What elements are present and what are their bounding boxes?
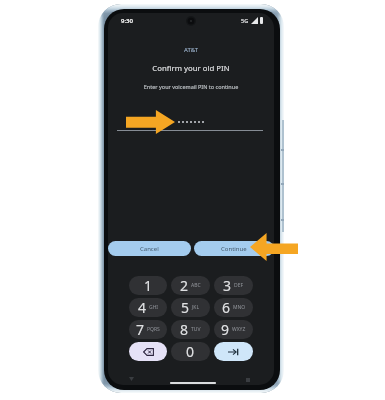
staticText: Continue xyxy=(221,245,247,253)
staticText: 2 xyxy=(180,276,189,295)
staticText: Enter your voicemail PIN to continue xyxy=(108,83,274,90)
button[interactable]: 9 xyxy=(214,320,253,339)
button[interactable]: Backspace xyxy=(129,342,167,361)
button[interactable]: 1 xyxy=(129,276,167,295)
staticText: 5 xyxy=(181,298,190,317)
staticText: DEF xyxy=(234,282,244,289)
staticText: ABC xyxy=(191,282,201,289)
staticText: 1 xyxy=(144,276,153,295)
staticText: 4 xyxy=(138,298,147,317)
staticText: 8 xyxy=(180,320,189,339)
staticText: AT&T xyxy=(108,46,274,54)
staticText: WXYZ xyxy=(232,326,246,333)
staticText: 6 xyxy=(222,298,231,317)
button[interactable]: 6 xyxy=(214,298,253,317)
button[interactable]: Submit xyxy=(214,342,253,361)
staticText: GHI xyxy=(149,304,159,311)
staticText: 9 xyxy=(221,320,230,339)
staticText: Cancel xyxy=(140,245,159,253)
staticText: MNO xyxy=(233,304,246,311)
staticText: TUV xyxy=(191,326,201,333)
button[interactable]: 2 xyxy=(171,276,210,295)
staticText: Confirm your old PIN xyxy=(108,63,274,74)
other: Back xyxy=(129,377,134,381)
staticText: 7 xyxy=(136,320,145,339)
staticText: 5G xyxy=(241,17,249,24)
button[interactable]: 5 xyxy=(171,298,210,317)
button[interactable]: 0 xyxy=(171,342,210,361)
button[interactable]: Cancel xyxy=(108,241,191,256)
staticText: 0 xyxy=(186,342,195,361)
button[interactable]: Continue xyxy=(194,241,274,256)
staticText: JKL xyxy=(192,304,200,311)
button[interactable]: 4 xyxy=(129,298,167,317)
staticText: PQRS xyxy=(147,326,160,333)
button[interactable]: 7 xyxy=(129,320,167,339)
button[interactable]: 8 xyxy=(171,320,210,339)
staticText: 9:30 xyxy=(121,17,133,25)
button[interactable]: 3 xyxy=(214,276,253,295)
staticText: 3 xyxy=(223,276,232,295)
